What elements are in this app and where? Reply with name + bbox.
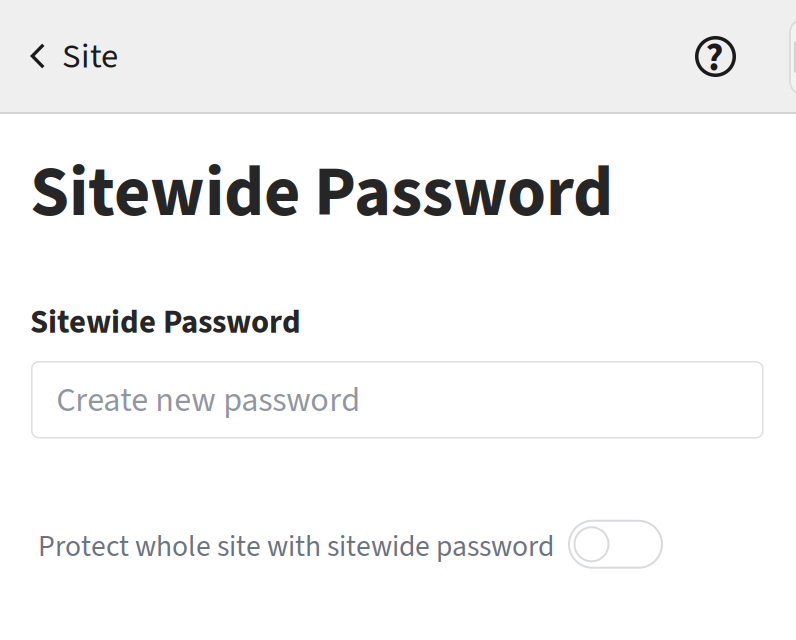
button[interactable]: More <box>790 0 796 94</box>
staticText: Site <box>62 32 118 81</box>
staticText: ? <box>705 31 723 86</box>
button[interactable]: Protect whole site with sitewide passwor… <box>569 517 662 568</box>
staticText: Create new password <box>56 376 360 425</box>
button[interactable]: Help <box>695 0 796 77</box>
staticText: Sitewide Password <box>30 143 613 243</box>
staticText: Protect whole site with sitewide passwor… <box>38 526 554 568</box>
button[interactable]: Site <box>0 0 190 112</box>
staticText: Sitewide Password <box>30 299 301 346</box>
